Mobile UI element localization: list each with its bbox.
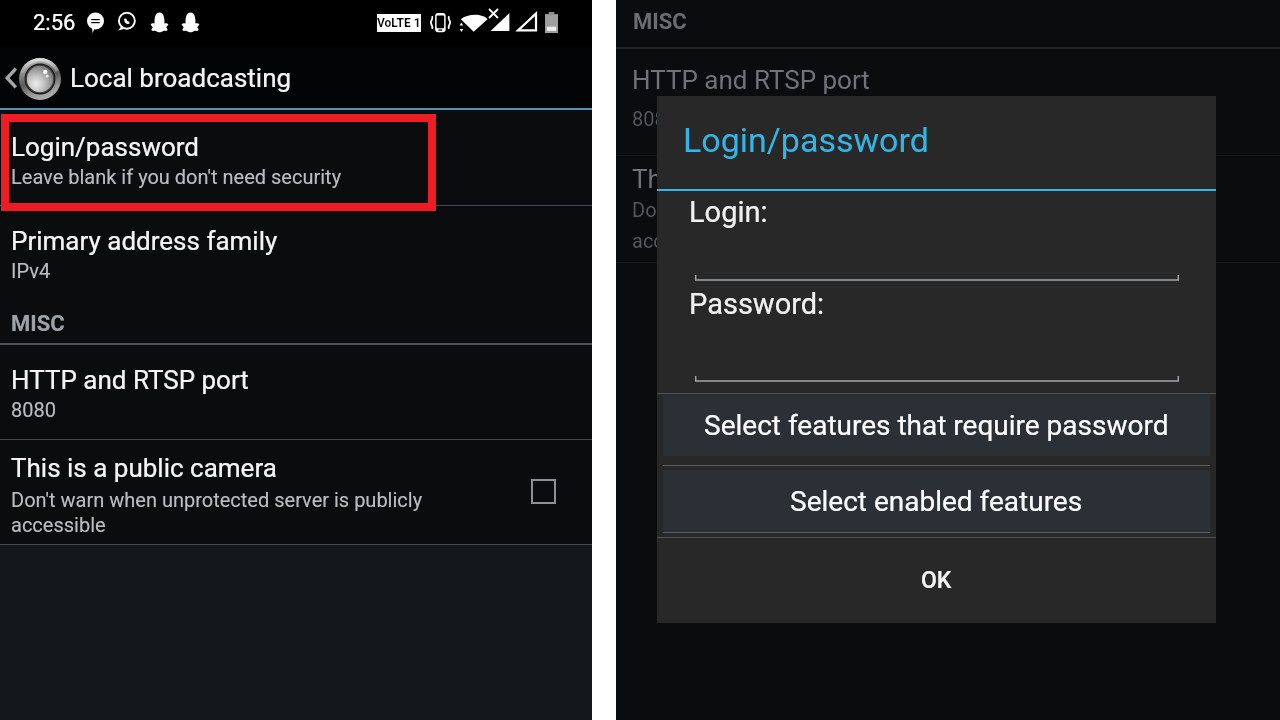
staticText: VoLTE 1 bbox=[377, 16, 421, 30]
staticText: Login: bbox=[689, 195, 768, 229]
staticText: Password: bbox=[689, 287, 825, 321]
button[interactable]: Select enabled features bbox=[663, 470, 1210, 532]
button[interactable]: This is a public camera bbox=[0, 440, 592, 544]
button[interactable]: Primary address family bbox=[0, 206, 592, 298]
button[interactable]: HTTP and RTSP port bbox=[0, 345, 592, 439]
staticText: MISC bbox=[11, 311, 65, 337]
button[interactable]: OK bbox=[657, 538, 1216, 623]
staticText: Select enabled features bbox=[790, 485, 1083, 518]
staticText: HTTP and RTSP port bbox=[11, 365, 249, 395]
staticText: This is a public camera bbox=[632, 164, 898, 194]
staticText: Local broadcasting bbox=[70, 63, 292, 93]
staticText: Don't warn when unprotected server is pu… bbox=[632, 198, 1044, 252]
staticText: Leave blank if you don't need security bbox=[11, 165, 342, 188]
button[interactable]: Login/password bbox=[0, 110, 592, 205]
staticText: Select features that require password bbox=[704, 409, 1169, 442]
staticText: 2:56 bbox=[33, 10, 76, 36]
staticText: Primary address family bbox=[11, 226, 278, 256]
staticText: IPv4 bbox=[11, 259, 51, 282]
staticText: Don't warn when unprotected server is pu… bbox=[11, 488, 451, 537]
staticText: This is a public camera bbox=[11, 453, 277, 483]
staticText: HTTP and RTSP port bbox=[632, 65, 870, 95]
button[interactable]: Select features that require password bbox=[663, 395, 1210, 456]
staticText: 8080 bbox=[11, 398, 56, 421]
staticText: Login/password bbox=[683, 120, 929, 160]
button[interactable]: Back bbox=[0, 46, 592, 108]
staticText: 8080 bbox=[632, 107, 677, 130]
staticText: Login/password bbox=[11, 132, 200, 162]
staticText: MISC bbox=[633, 9, 687, 35]
staticText: OK bbox=[921, 567, 952, 594]
